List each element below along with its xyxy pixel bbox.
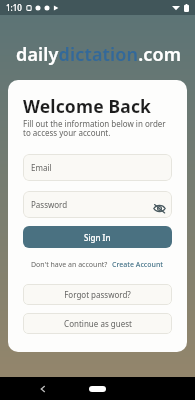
staticText: Create Account — [112, 260, 164, 270]
button[interactable]: Password — [23, 191, 172, 218]
staticText: Welcome Back — [23, 94, 152, 118]
button[interactable]: Create Account — [112, 260, 164, 270]
button[interactable]: Show password — [153, 202, 166, 215]
button[interactable]: Forgot password? — [23, 284, 172, 305]
staticText: dailydictation.com — [16, 42, 182, 67]
staticText: Fill out the information below in order … — [23, 118, 172, 139]
button[interactable]: Back — [37, 383, 49, 395]
staticText: Password — [31, 199, 68, 210]
staticText: Forgot password? — [64, 289, 131, 300]
staticText: Sign In — [84, 232, 111, 243]
staticText: Email — [31, 162, 52, 173]
button[interactable]: Sign In — [23, 226, 172, 248]
button[interactable]: Home — [89, 386, 106, 392]
staticText: Continue as guest — [64, 318, 132, 329]
button[interactable]: Continue as guest — [23, 313, 172, 334]
button[interactable]: Email — [23, 154, 172, 181]
staticText: 1:10 — [6, 2, 22, 13]
staticText: Don't have an account? — [31, 260, 108, 270]
